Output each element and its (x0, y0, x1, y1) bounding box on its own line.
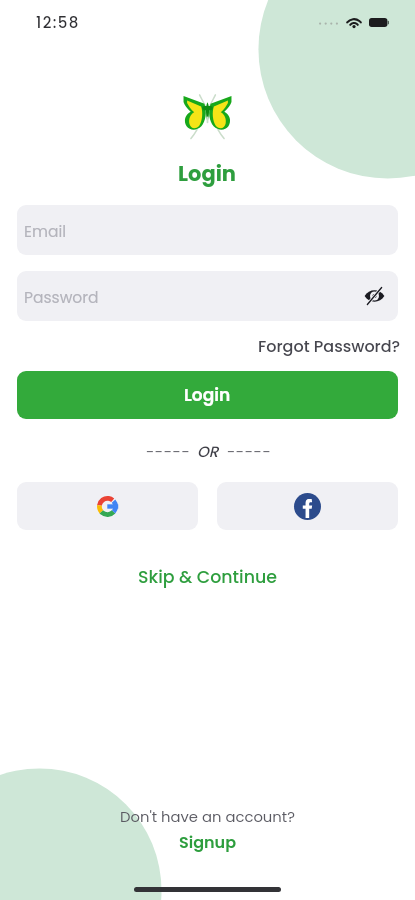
staticText: Password (24, 287, 99, 309)
staticText: Don't have an account? (120, 806, 295, 827)
staticText: Signup (179, 831, 237, 853)
staticText: 12:58 (36, 12, 80, 33)
staticText: - - - - - (146, 441, 189, 462)
staticText: Login (184, 383, 231, 407)
staticText: Email (24, 221, 67, 243)
button[interactable]: Email (17, 205, 398, 255)
staticText: Login (178, 159, 237, 188)
button[interactable]: Login (17, 371, 398, 419)
staticText: Skip & Continue (138, 565, 277, 589)
staticText: - - - - - (227, 441, 270, 462)
staticText: OR (197, 441, 219, 462)
button[interactable]: Toggle password visibility (361, 283, 387, 309)
staticText: Forgot Password? (258, 335, 401, 357)
button[interactable]: Forgot Password? (256, 333, 403, 359)
button[interactable]: Sign in with Facebook (217, 482, 398, 530)
button[interactable]: Signup (175, 830, 241, 854)
button[interactable]: Skip & Continue (134, 561, 281, 593)
button[interactable]: Sign in with Google (17, 482, 198, 530)
button[interactable]: Password (17, 271, 398, 321)
